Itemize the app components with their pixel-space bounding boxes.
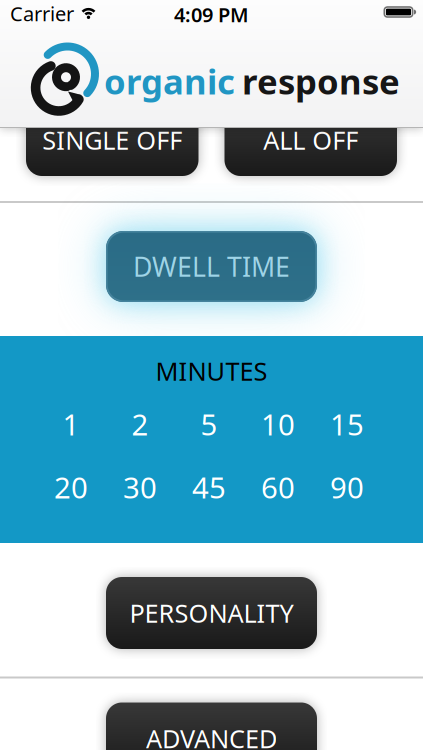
- button[interactable]: 2: [105, 405, 174, 444]
- staticText: PERSONALITY: [129, 596, 293, 630]
- button[interactable]: 90: [312, 468, 381, 507]
- button[interactable]: 20: [36, 468, 105, 507]
- button[interactable]: 10: [243, 405, 312, 444]
- button[interactable]: ALL OFF: [224, 104, 397, 176]
- staticText: MINUTES: [155, 354, 267, 388]
- staticText: SINGLE OFF: [42, 123, 182, 157]
- button[interactable]: 15: [312, 405, 381, 444]
- staticText: response: [242, 58, 400, 104]
- button[interactable]: 30: [105, 468, 174, 507]
- staticText: 2: [131, 405, 148, 444]
- staticText: ALL OFF: [263, 123, 358, 157]
- staticText: 90: [330, 468, 364, 507]
- button[interactable]: 45: [174, 468, 243, 507]
- staticText: 20: [54, 468, 88, 507]
- button[interactable]: 5: [174, 405, 243, 444]
- staticText: DWELL TIME: [133, 249, 290, 284]
- staticText: 5: [200, 405, 217, 444]
- button[interactable]: SINGLE OFF: [26, 104, 198, 176]
- button[interactable]: 1: [36, 405, 105, 444]
- staticText: ADVANCED: [146, 722, 277, 750]
- button[interactable]: 60: [243, 468, 312, 507]
- staticText: organic: [104, 58, 235, 104]
- staticText: 1: [62, 405, 79, 444]
- button[interactable]: ADVANCED: [106, 702, 317, 750]
- button[interactable]: DWELL TIME: [106, 231, 317, 302]
- staticText: 15: [330, 405, 364, 444]
- button[interactable]: PERSONALITY: [106, 577, 317, 649]
- staticText: 60: [261, 468, 295, 507]
- staticText: 45: [192, 468, 226, 507]
- staticText: 4:09 PM: [174, 1, 249, 28]
- staticText: 10: [261, 405, 295, 444]
- staticText: 30: [123, 468, 157, 507]
- staticText: Carrier: [10, 0, 74, 27]
